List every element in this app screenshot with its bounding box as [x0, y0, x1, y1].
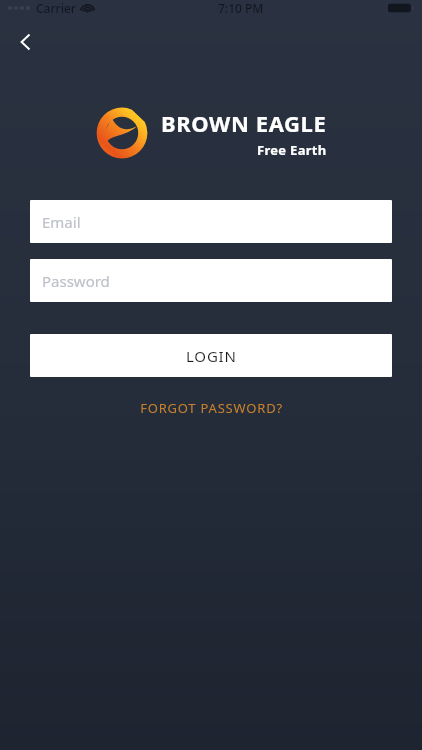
button[interactable]: FORGOT PASSWORD? [0, 399, 422, 417]
staticText: Password [42, 271, 110, 291]
staticText: BROWN EAGLE [161, 108, 327, 138]
staticText: FORGOT PASSWORD? [140, 399, 283, 417]
staticText: Email [42, 212, 81, 232]
button[interactable]: Email [30, 200, 392, 243]
staticText: LOGIN [186, 346, 237, 366]
staticText: Carrier [36, 0, 76, 16]
staticText: Free Earth [257, 141, 327, 159]
button[interactable]: LOGIN [30, 334, 392, 377]
button[interactable]: Password [30, 259, 392, 302]
button[interactable]: Back [4, 20, 48, 64]
staticText: 7:10 PM [218, 0, 264, 16]
